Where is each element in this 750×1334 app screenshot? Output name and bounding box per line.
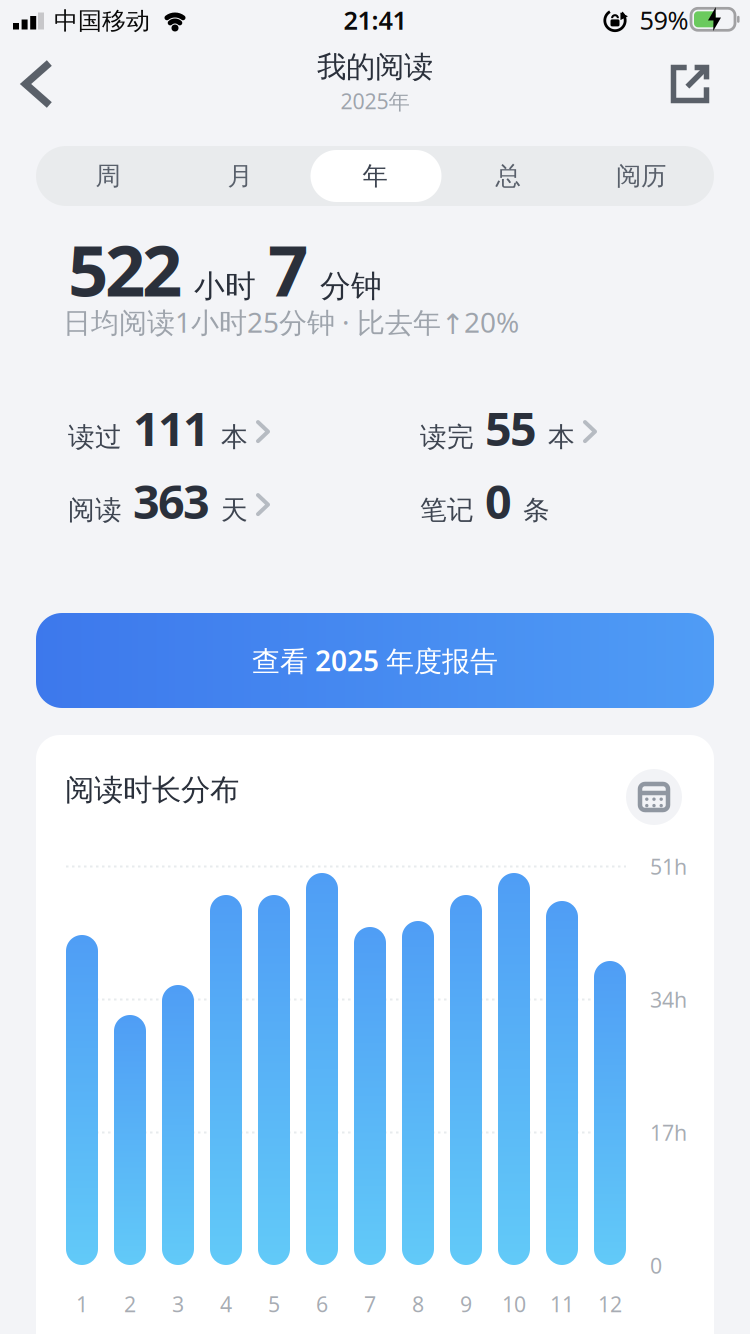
staticText: 阅读时长分布 bbox=[65, 772, 239, 808]
staticText: 我的阅读 bbox=[317, 49, 433, 85]
staticText: 2 bbox=[124, 1290, 136, 1318]
staticText: 读过 bbox=[68, 421, 122, 454]
button[interactable]: 笔记 bbox=[420, 470, 550, 532]
button[interactable]: 总 bbox=[442, 146, 574, 206]
staticText: 1 bbox=[76, 1290, 88, 1318]
staticText: 522 bbox=[68, 222, 182, 316]
staticText: 读完 bbox=[420, 421, 474, 454]
button[interactable]: 读完 bbox=[420, 397, 595, 459]
staticText: 阅读 bbox=[68, 494, 122, 527]
staticText: 阅历 bbox=[616, 160, 666, 191]
staticText: 2025年 bbox=[340, 87, 409, 115]
staticText: 0 bbox=[650, 1251, 662, 1280]
staticText: 分钟 bbox=[320, 267, 382, 305]
button[interactable]: 年 bbox=[309, 146, 441, 206]
button[interactable]: 阅读 bbox=[68, 470, 268, 532]
staticText: 日均阅读1小时25分钟 · 比去年↑20% bbox=[63, 303, 519, 341]
staticText: 111 bbox=[133, 397, 210, 459]
staticText: 9 bbox=[460, 1290, 472, 1318]
button[interactable]: Calendar bbox=[626, 769, 682, 825]
staticText: 中国移动 bbox=[54, 6, 150, 36]
staticText: 天 bbox=[221, 494, 248, 527]
staticText: 总 bbox=[495, 160, 520, 191]
staticText: 查看 2025 年度报告 bbox=[252, 642, 498, 679]
button[interactable]: 月 bbox=[174, 146, 306, 206]
button[interactable]: 周 bbox=[42, 146, 174, 206]
staticText: 小时 bbox=[194, 267, 256, 305]
staticText: 55 bbox=[485, 397, 537, 459]
staticText: 月 bbox=[227, 160, 252, 191]
staticText: 34h bbox=[650, 985, 687, 1014]
button[interactable]: 读过 bbox=[68, 397, 268, 459]
staticText: 笔记 bbox=[420, 494, 474, 527]
staticText: 本 bbox=[221, 421, 248, 454]
staticText: 7 bbox=[364, 1290, 376, 1318]
staticText: 59% bbox=[639, 3, 688, 37]
staticText: 12 bbox=[598, 1290, 622, 1318]
staticText: 年 bbox=[362, 160, 387, 191]
staticText: 本 bbox=[548, 421, 575, 454]
staticText: 4 bbox=[220, 1290, 232, 1318]
staticText: 363 bbox=[133, 470, 210, 532]
staticText: 7 bbox=[268, 222, 308, 316]
button[interactable]: Back bbox=[12, 55, 59, 112]
staticText: 11 bbox=[550, 1290, 574, 1318]
staticText: 17h bbox=[650, 1118, 687, 1147]
staticText: 8 bbox=[412, 1290, 424, 1318]
staticText: 条 bbox=[523, 494, 550, 527]
staticText: 21:41 bbox=[343, 3, 406, 37]
button[interactable]: Share bbox=[663, 57, 716, 110]
button[interactable]: 查看 2025 年度报告 bbox=[36, 613, 714, 708]
button[interactable]: 阅历 bbox=[575, 146, 707, 206]
staticText: 51h bbox=[650, 852, 687, 881]
staticText: 0 bbox=[485, 470, 512, 532]
staticText: 10 bbox=[502, 1290, 526, 1318]
staticText: 周 bbox=[95, 160, 120, 191]
staticText: 5 bbox=[268, 1290, 280, 1318]
staticText: 6 bbox=[316, 1290, 328, 1318]
staticText: 3 bbox=[172, 1290, 184, 1318]
